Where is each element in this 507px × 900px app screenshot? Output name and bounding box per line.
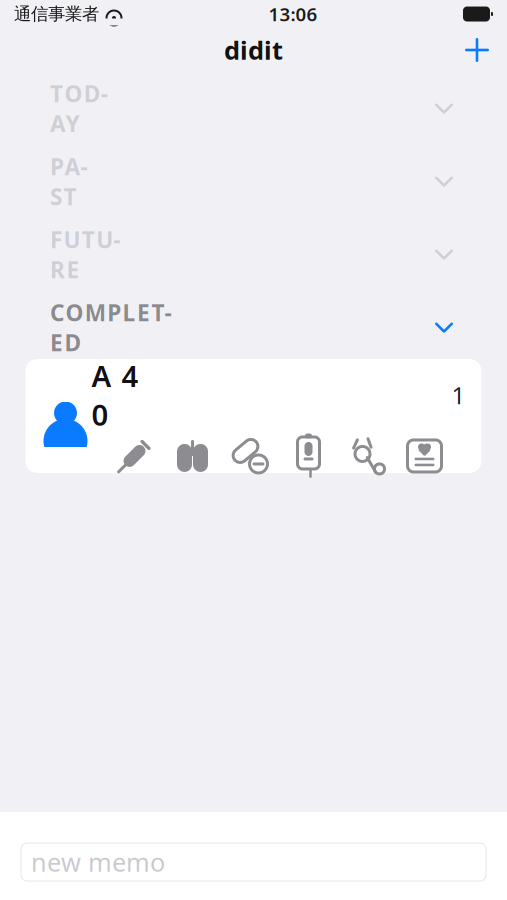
staticText: new memo <box>31 845 165 879</box>
button[interactable]: new memo <box>21 843 486 881</box>
button[interactable]: PAST <box>0 145 507 218</box>
staticText: 13:06 <box>268 2 317 26</box>
staticText: A 4 0 <box>91 356 138 434</box>
button[interactable]: FUTURE <box>0 218 507 291</box>
staticText: 通信事業者 <box>14 3 99 25</box>
button[interactable]: Add <box>455 28 499 72</box>
staticText: 1 <box>451 379 465 411</box>
staticText: didit <box>224 33 283 67</box>
staticText: PAST <box>50 151 101 212</box>
staticText: COMPLETED <box>50 297 186 358</box>
staticText: FUTURE <box>50 224 137 285</box>
button[interactable]: TODAY <box>0 72 507 145</box>
button[interactable]: COMPLETED <box>0 291 507 364</box>
button[interactable]: A 4 0 <box>25 359 481 473</box>
staticText: TODAY <box>50 78 124 139</box>
